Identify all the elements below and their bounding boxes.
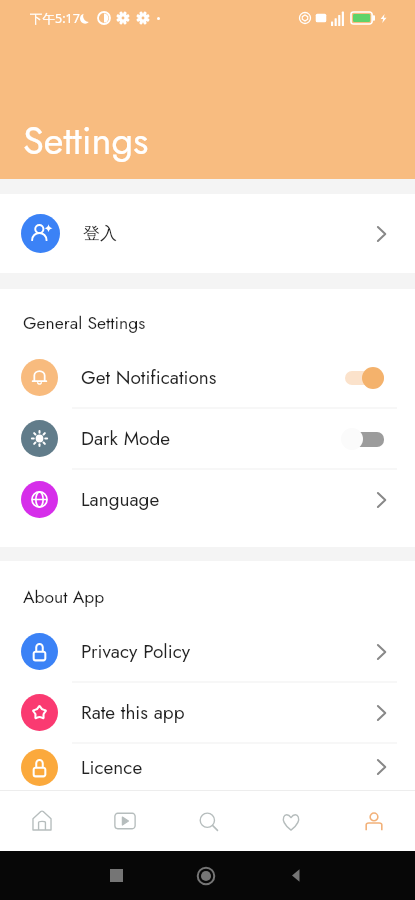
button[interactable]: Language xyxy=(0,470,415,529)
staticText: Language xyxy=(81,486,160,513)
staticText: Settings xyxy=(23,113,149,168)
staticText: Licence xyxy=(81,754,143,781)
button[interactable]: Search xyxy=(166,790,249,851)
staticText: Rate this app xyxy=(81,699,185,726)
button[interactable]: Privacy Policy xyxy=(0,622,415,681)
button[interactable]: Licence xyxy=(0,744,415,790)
staticText: Privacy Policy xyxy=(81,638,191,665)
staticText: 下午5:17 xyxy=(30,10,80,27)
button[interactable]: Home xyxy=(0,790,83,851)
staticText: 登入 xyxy=(83,223,117,244)
button[interactable]: Videos xyxy=(83,790,166,851)
button[interactable]: Favourites xyxy=(249,790,332,851)
staticText: General Settings xyxy=(23,310,146,335)
staticText: Dark Mode xyxy=(81,425,171,452)
staticText: About App xyxy=(23,584,105,609)
button[interactable]: Get Notifications xyxy=(0,348,415,407)
button[interactable]: Profile xyxy=(332,790,415,851)
button[interactable]: Dark Mode xyxy=(0,409,415,468)
staticText: Get Notifications xyxy=(81,364,217,391)
button[interactable]: Rate this app xyxy=(0,683,415,742)
button[interactable]: 登入 xyxy=(0,194,415,273)
